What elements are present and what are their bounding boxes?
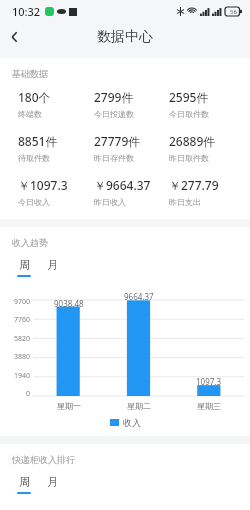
staticText: 今日收入 [18,197,50,207]
staticText: 昨日支出 [169,197,201,207]
staticText: 27779件 [94,133,141,149]
button[interactable]: 周 [10,473,38,496]
button[interactable]: Back [0,22,30,52]
staticText: 星期三 [197,401,221,411]
staticText: 8851件 [18,133,58,149]
staticText: 昨日取件数 [169,153,209,163]
staticText: 昨日收入 [94,197,126,207]
staticText: 1940 [13,371,30,381]
staticText: 今日取件数 [169,109,209,119]
button[interactable]: 周 [10,256,38,279]
staticText: 昨日存件数 [94,153,134,163]
staticText: 5820 [13,334,30,344]
staticText: 数据中心 [97,28,153,46]
staticText: 今日投递数 [94,109,134,119]
staticText: 180个 [18,89,51,105]
staticText: 周 [19,475,30,489]
staticText: 星期一 [57,401,81,411]
staticText: ￥9664.37 [94,177,151,193]
staticText: 1097.3 [196,376,222,387]
staticText: 周 [19,258,30,272]
staticText: 星期二 [127,401,151,411]
button[interactable]: 月 [38,256,66,279]
staticText: 2799件 [94,89,134,105]
staticText: 9038.48 [54,298,84,309]
staticText: 收入趋势 [12,237,48,248]
staticText: 7760 [13,315,30,325]
staticText: 快递柜收入排行 [12,454,75,465]
staticText: 9700 [13,297,30,307]
staticText: 待取件数 [18,153,50,163]
staticText: 9664.37 [124,291,154,302]
staticText: 56 [230,8,237,16]
staticText: 26889件 [169,133,216,149]
staticText: 月 [47,475,58,489]
staticText: 2595件 [169,89,209,105]
staticText: 终端数 [18,109,42,119]
staticText: 基础数据 [12,68,48,79]
staticText: 10:32 [12,4,41,19]
staticText: 3880 [13,352,30,362]
staticText: ￥277.79 [169,177,219,193]
staticText: 月 [47,258,58,272]
staticText: 0 [25,389,30,399]
staticText: ￥1097.3 [18,177,68,193]
button[interactable]: 月 [38,473,66,496]
staticText: 收入 [123,417,141,428]
